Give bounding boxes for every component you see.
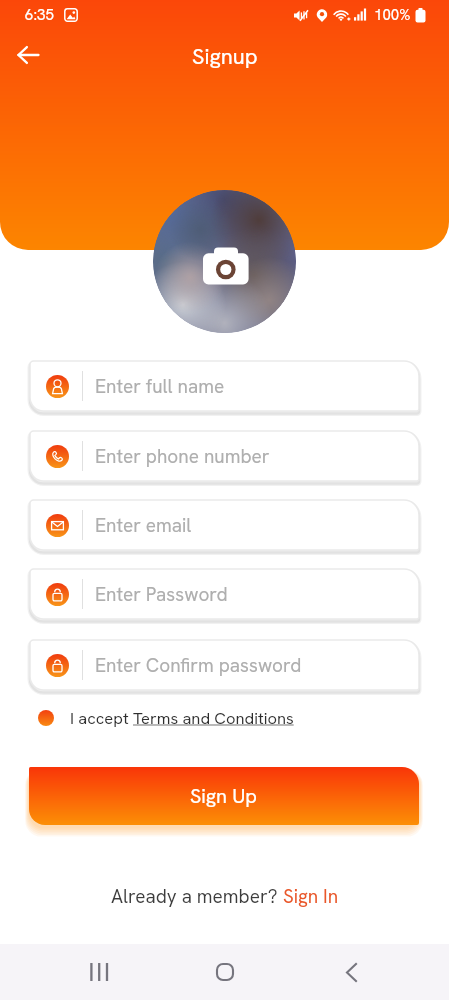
button[interactable]: Enter full name (30, 361, 419, 411)
button[interactable]: Home (162, 944, 288, 1000)
button[interactable]: Enter phone number (30, 431, 419, 481)
button[interactable]: Change profile photo (153, 190, 296, 333)
staticText: 100% (374, 5, 411, 25)
staticText: Sign Up (190, 783, 258, 809)
button[interactable]: Enter Confirm password (30, 640, 419, 690)
staticText: 6:35 (25, 5, 54, 25)
staticText: Signup (192, 42, 258, 71)
staticText: Enter Confirm password (95, 653, 302, 678)
button[interactable]: Back (6, 33, 50, 77)
button[interactable]: Sign Up (29, 767, 419, 825)
staticText: Already a member? (111, 884, 283, 909)
staticText: Enter Password (95, 582, 228, 607)
staticText: Terms and Conditions (133, 707, 294, 728)
button[interactable]: Sign In (283, 884, 339, 909)
staticText: Enter phone number (95, 444, 270, 469)
staticText: I accept (70, 707, 133, 728)
button[interactable]: Enter Password (30, 569, 419, 619)
staticText: Enter full name (95, 374, 225, 399)
staticText: Enter email (95, 513, 192, 538)
button[interactable]: Recent apps (36, 944, 162, 1000)
button[interactable]: Enter email (30, 500, 419, 550)
button[interactable]: Back (288, 944, 414, 1000)
button[interactable]: I accept (38, 707, 294, 728)
